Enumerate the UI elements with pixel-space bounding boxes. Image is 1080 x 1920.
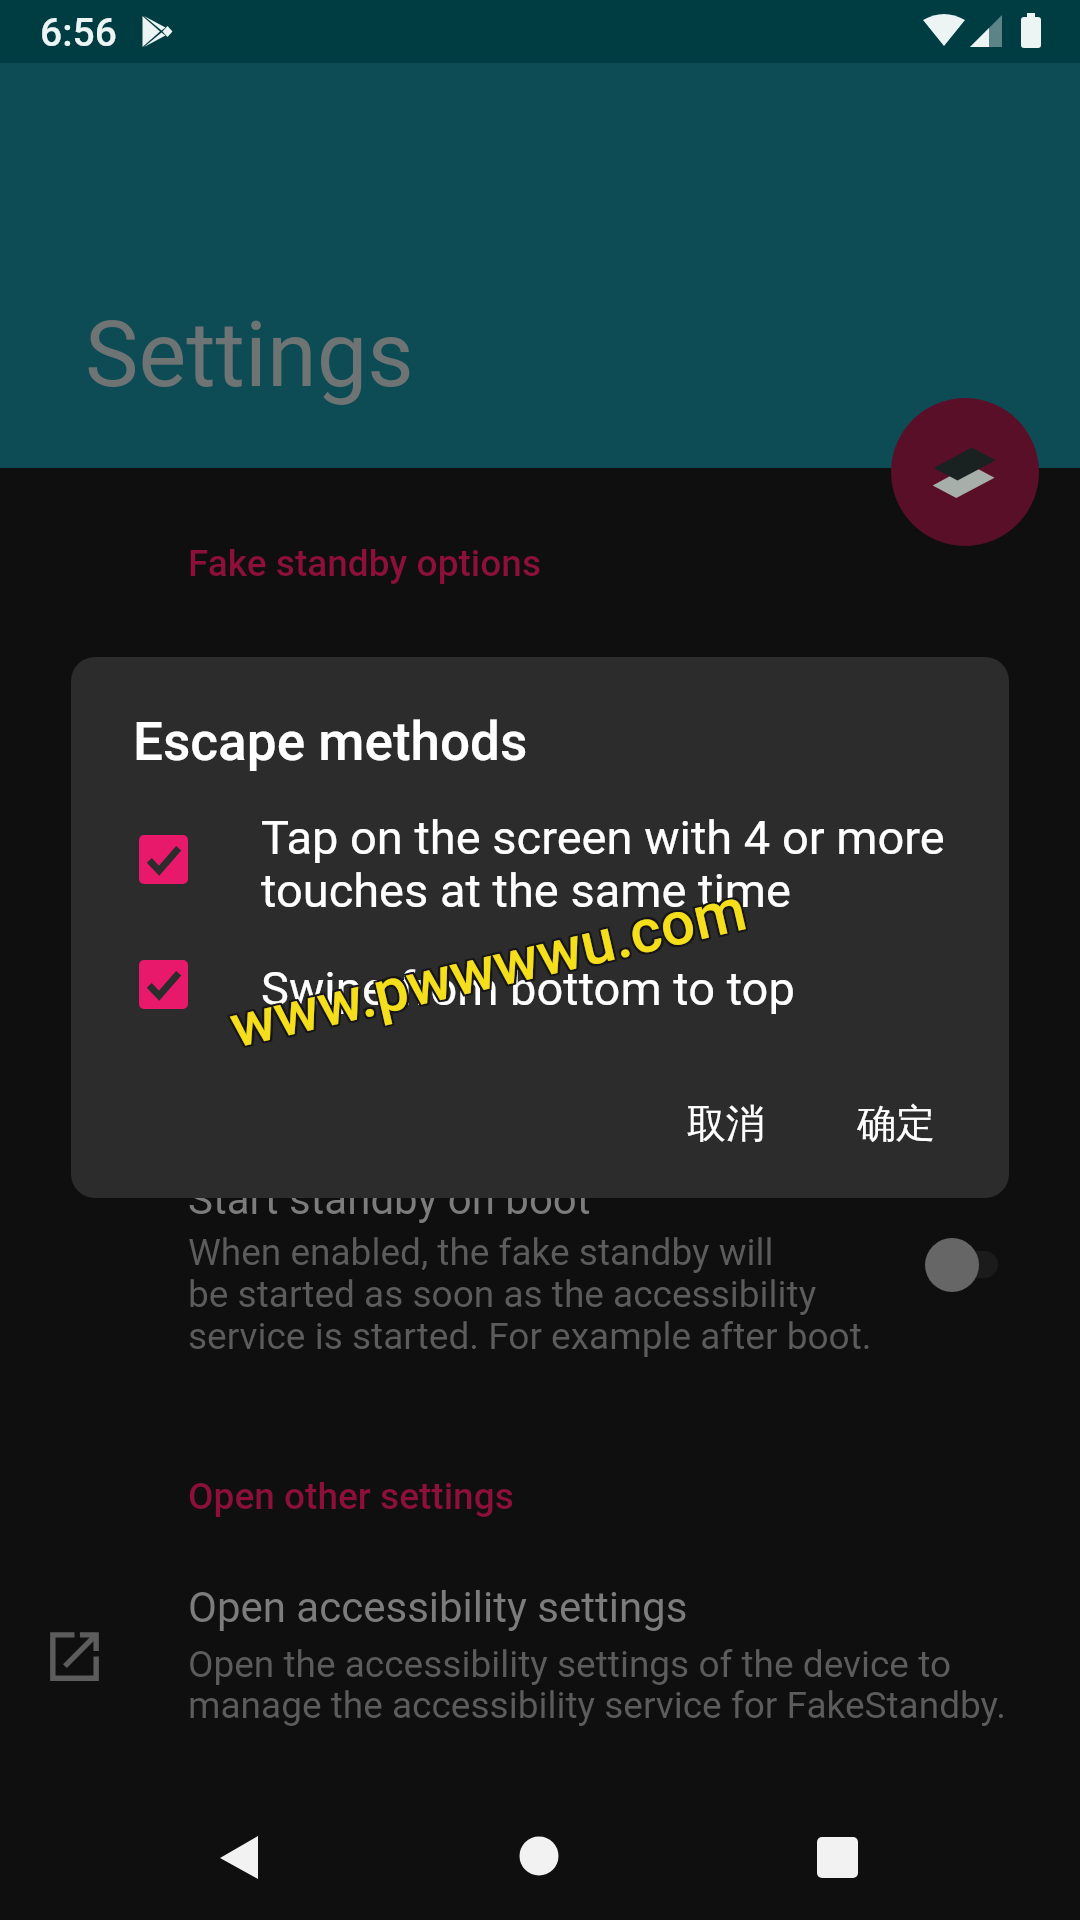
staticText: www.pwwwwu.com [221,872,750,1060]
staticText: Open accessibility settings [188,1583,688,1632]
staticText: Fake standby options [188,542,542,585]
button[interactable]: Open accessibility settings [0,1570,1080,1745]
staticText: 取消 [687,1099,765,1148]
button[interactable]: Recent apps [758,1800,918,1914]
staticText: www.pwwwwu.com [223,872,752,1059]
button[interactable]: Swipe from bottom to top [110,940,990,1032]
staticText: be started as soon as the accessibility [188,1273,817,1316]
staticText: www.pwwwwu.com [225,871,754,1059]
staticText: www.pwwwwu.com [226,875,755,1063]
staticText: touches at the same time [261,863,791,918]
staticText: 6:56 [40,10,117,56]
staticText: service is started. For example after bo… [188,1315,872,1358]
staticText: Open the accessibility settings of the d… [188,1643,951,1686]
staticText: Escape methods [133,711,528,773]
button[interactable]: Play Store notification [142,16,174,48]
staticText: www.pwwwwu.com [225,873,754,1061]
staticText: 确定 [857,1099,935,1148]
staticText: Swipe from bottom to top [261,961,795,1016]
staticText: manage the accessibility service for Fak… [188,1684,1006,1727]
staticText: When enabled, the fake standby will [188,1231,774,1274]
staticText: www.pwwwwu.com [223,874,752,1061]
button[interactable]: Start fake standby [891,398,1039,546]
staticText: Start standby on boot [188,1175,591,1224]
button[interactable]: 取消 [655,1080,795,1165]
button[interactable]: 确定 [825,1080,965,1165]
staticText: www.pwwwwu.com [224,876,753,1063]
staticText: Settings [85,303,414,408]
staticText: www.pwwwwu.com [222,876,751,1064]
staticText: www.pwwwwu.com [221,874,751,1062]
button[interactable]: Home [460,1800,620,1914]
staticText: Tap on the screen with 4 or more [261,810,945,865]
button[interactable]: Tap on the screen with 4 or more [110,808,990,932]
button[interactable]: Back [160,1800,320,1914]
button[interactable]: Start standby on boot [0,1180,1080,1375]
staticText: Open other settings [188,1475,514,1518]
